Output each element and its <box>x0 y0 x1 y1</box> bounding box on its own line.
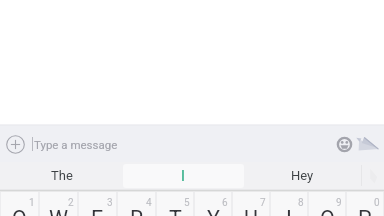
staticText: Y <box>207 206 220 216</box>
button[interactable]: 7 <box>233 192 269 216</box>
button[interactable]: 8 <box>271 192 307 216</box>
staticText: I <box>286 206 292 216</box>
staticText: 7 <box>260 197 266 209</box>
staticText: 4 <box>146 197 152 209</box>
staticText: Hey <box>291 168 314 183</box>
button[interactable]: The <box>0 162 123 189</box>
button[interactable]: Add attachment <box>0 126 30 162</box>
staticText: I <box>181 168 185 185</box>
staticText: U <box>244 206 258 216</box>
staticText: E <box>91 206 104 216</box>
staticText: Q <box>12 206 27 216</box>
button[interactable]: 9 <box>309 192 345 216</box>
staticText: 3 <box>107 197 113 209</box>
staticText: 0 <box>374 197 380 209</box>
staticText: 1 <box>29 197 35 209</box>
button[interactable]: 3 <box>79 192 116 216</box>
staticText: 9 <box>336 197 342 209</box>
button[interactable]: 1 <box>1 192 38 216</box>
staticText: T <box>169 206 182 216</box>
staticText: 5 <box>184 197 190 209</box>
button[interactable]: 6 <box>195 192 231 216</box>
button[interactable]: Hey <box>244 162 361 189</box>
staticText: O <box>320 206 335 216</box>
staticText: 8 <box>298 197 304 209</box>
staticText: The <box>51 168 73 183</box>
staticText: Type a message <box>34 138 118 151</box>
staticText: P <box>358 206 372 216</box>
button[interactable]: 4 <box>118 192 155 216</box>
button[interactable]: 0 <box>347 192 383 216</box>
staticText: W <box>49 206 69 216</box>
staticText: 6 <box>222 197 228 209</box>
button[interactable]: 2 <box>40 192 77 216</box>
staticText: 2 <box>68 197 74 209</box>
button[interactable]: 5 <box>157 192 193 216</box>
button[interactable]: I <box>123 164 244 188</box>
button[interactable]: Send <box>354 126 384 162</box>
button[interactable]: Emoji <box>331 126 354 162</box>
staticText: R <box>130 206 144 216</box>
